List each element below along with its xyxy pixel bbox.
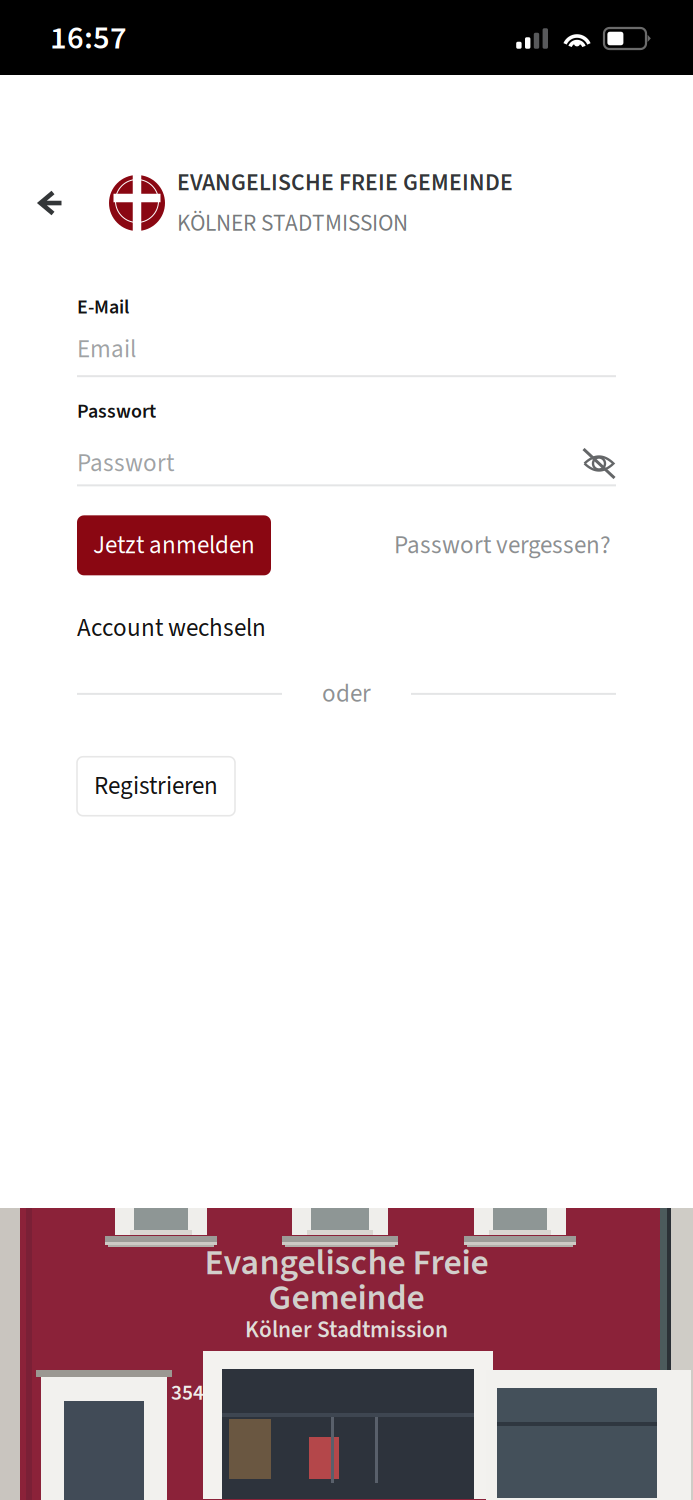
staticText: Email [77, 331, 136, 367]
staticText: Passwort [77, 446, 174, 481]
button[interactable]: Passwort anzeigen [570, 447, 616, 479]
button[interactable]: Jetzt anmelden [77, 515, 271, 575]
button[interactable]: Account wechseln [77, 610, 266, 646]
staticText: Gemeinde [268, 1272, 424, 1324]
button[interactable]: Zurück [0, 174, 86, 232]
staticText: Registrieren [94, 768, 218, 804]
staticText: Evangelische Freie [204, 1237, 488, 1289]
staticText: Kölner Stadtmission [245, 1313, 448, 1347]
staticText: 354 [171, 1378, 204, 1408]
staticText: Passwort [77, 397, 156, 426]
staticText: Passwort vergessen? [394, 527, 611, 563]
button[interactable]: Passwort vergessen? [394, 527, 611, 563]
staticText: EVANGELISCHE FREIE GEMEINDE [177, 166, 513, 200]
staticText: E-Mail [77, 293, 129, 321]
button[interactable]: Registrieren [77, 757, 235, 816]
staticText: 16:57 [50, 15, 127, 61]
staticText: Jetzt anmelden [93, 527, 255, 563]
staticText: oder [322, 676, 371, 712]
staticText: KÖLNER STADTMISSION [177, 207, 408, 240]
staticText: Account wechseln [77, 610, 266, 646]
